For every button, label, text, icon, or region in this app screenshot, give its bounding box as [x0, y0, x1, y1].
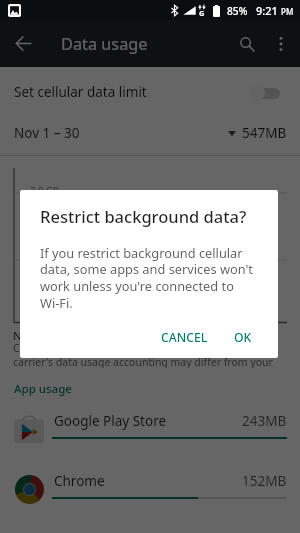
staticText: Chrome: [54, 472, 105, 490]
staticText: 152MB: [242, 472, 287, 490]
button[interactable]: OK: [226, 322, 260, 353]
staticText: Restrict background data?: [40, 205, 247, 227]
button[interactable]: Search: [229, 26, 264, 61]
button[interactable]: Network restrictions: [0, 326, 300, 352]
staticText: If you restrict background cellular data…: [40, 244, 266, 312]
staticText: 85%: [227, 4, 248, 18]
button[interactable]: Nov 1 – 30: [0, 117, 300, 151]
staticText: Network restrictions: [13, 328, 123, 344]
staticText: 2.0 GB: [30, 184, 59, 197]
button[interactable]: Set cellular data limit: [0, 67, 300, 113]
staticText: 547MB: [242, 124, 287, 142]
staticText: Nov 1 – 30: [14, 124, 80, 142]
staticText: 1.0 GB: [30, 251, 59, 264]
button[interactable]: More options: [264, 27, 298, 61]
staticText: 9:21: [256, 3, 278, 18]
staticText: Data usage: [61, 33, 148, 55]
staticText: PM: [281, 6, 294, 17]
button[interactable]: Google Play Store: [0, 406, 300, 454]
staticText: Google Play Store: [54, 412, 167, 430]
staticText: OK: [234, 329, 252, 346]
button[interactable]: Back: [5, 25, 42, 62]
staticText: App usage: [14, 381, 72, 397]
button[interactable]: Chrome: [0, 466, 300, 514]
staticText: G: [199, 8, 205, 18]
staticText: 243MB: [242, 412, 287, 430]
button[interactable]: CANCEL: [153, 322, 216, 353]
staticText: Set cellular data limit: [14, 83, 147, 101]
staticText: Cellular data usage is measured by your …: [13, 341, 277, 368]
staticText: CANCEL: [161, 329, 208, 346]
